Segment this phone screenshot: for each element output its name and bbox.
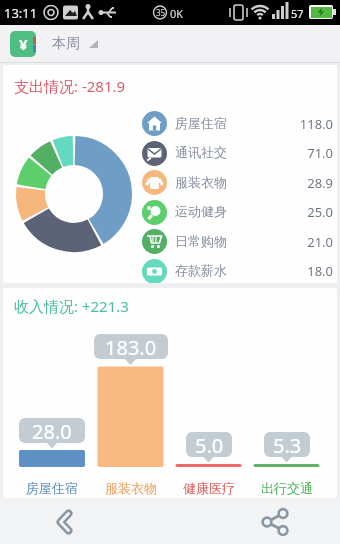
staticText: 服装衣物 <box>92 480 170 496</box>
staticText: 21.0 <box>248 233 333 251</box>
staticText: 0K <box>170 6 184 21</box>
staticText: 28.9 <box>248 174 333 192</box>
staticText: 收入情况: +221.3 <box>14 296 129 316</box>
staticText: 服装衣物 <box>175 174 227 190</box>
staticText: 18.0 <box>248 262 333 280</box>
staticText: 57 <box>291 6 304 21</box>
staticText: 房屋住宿 <box>175 115 227 131</box>
button[interactable] <box>245 502 305 542</box>
staticText: 118.0 <box>248 115 333 133</box>
staticText: 运动健身 <box>175 203 227 219</box>
staticText: 房屋住宿 <box>13 480 91 496</box>
staticText: 支出情况: -281.9 <box>14 76 126 96</box>
staticText: 健康医疗 <box>170 480 248 496</box>
staticText: 183.0 <box>105 334 157 359</box>
staticText: ¥ <box>19 34 28 54</box>
staticText: 28.0 <box>32 418 72 443</box>
staticText: 25.0 <box>248 203 333 221</box>
staticText: 本周 <box>52 35 80 53</box>
staticText: 通讯社交 <box>175 144 227 160</box>
staticText: 71.0 <box>248 144 333 162</box>
staticText: 日常购物 <box>175 233 227 249</box>
staticText: 35 <box>156 7 166 18</box>
staticText: 13:11 <box>4 4 38 22</box>
button[interactable] <box>35 502 95 542</box>
staticText: 5.3 <box>273 432 302 457</box>
staticText: 出行交通 <box>248 480 326 496</box>
button[interactable]: ¥ <box>0 25 100 63</box>
staticText: 存款薪水 <box>175 262 227 278</box>
staticText: 5.0 <box>195 432 224 457</box>
